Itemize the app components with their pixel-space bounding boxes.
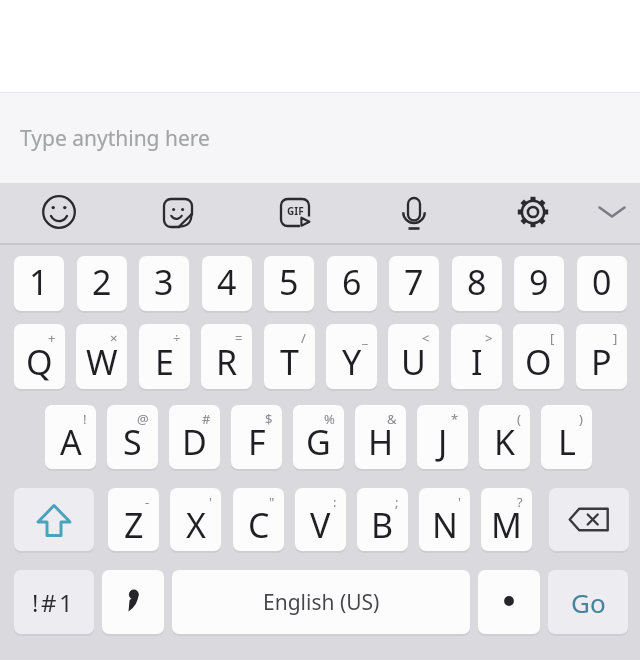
staticText: = xyxy=(235,329,243,347)
button[interactable] xyxy=(156,191,200,235)
staticText: ; xyxy=(395,493,399,511)
button[interactable]: J xyxy=(417,405,468,469)
staticText: 9 xyxy=(529,259,549,305)
button[interactable] xyxy=(590,190,634,234)
button[interactable]: 6 xyxy=(327,256,377,311)
staticText: [ xyxy=(550,329,555,347)
button[interactable]: E xyxy=(139,324,190,389)
button[interactable]: 2 xyxy=(77,256,127,311)
staticText: + xyxy=(48,329,56,347)
button[interactable]: T xyxy=(264,324,315,389)
staticText: 6 xyxy=(342,259,362,305)
button[interactable]: I xyxy=(451,324,502,389)
button[interactable]: B xyxy=(357,488,408,551)
button[interactable] xyxy=(478,570,540,634)
button[interactable]: Go xyxy=(548,570,628,634)
button[interactable]: 9 xyxy=(514,256,564,311)
staticText: A xyxy=(60,419,82,465)
button[interactable]: X xyxy=(170,488,221,551)
button[interactable] xyxy=(102,570,164,634)
staticText: - xyxy=(145,493,150,511)
button[interactable]: English (US) xyxy=(172,570,470,634)
button[interactable]: H xyxy=(355,405,406,469)
button[interactable]: A xyxy=(45,405,96,469)
button[interactable]: O xyxy=(513,324,564,389)
staticText: C xyxy=(248,502,270,548)
staticText: 2 xyxy=(92,259,112,305)
button[interactable] xyxy=(37,190,81,234)
button[interactable]: M xyxy=(481,488,532,551)
staticText: × xyxy=(110,329,118,347)
staticText: !#1 xyxy=(32,586,76,619)
button[interactable]: 8 xyxy=(452,256,502,311)
button[interactable]: C xyxy=(233,488,284,551)
button[interactable]: GIF xyxy=(273,191,317,235)
button[interactable]: N xyxy=(419,488,470,551)
button[interactable]: D xyxy=(169,405,220,469)
staticText: P xyxy=(591,339,612,385)
button[interactable]: 3 xyxy=(139,256,189,311)
staticText: B xyxy=(371,502,394,548)
button[interactable]: 0 xyxy=(577,256,627,311)
button[interactable]: 1 xyxy=(14,256,64,311)
staticText: GIF xyxy=(287,204,304,218)
staticText: O xyxy=(525,339,552,385)
button[interactable] xyxy=(14,488,94,551)
button[interactable]: K xyxy=(479,405,530,469)
staticText: _ xyxy=(362,329,368,347)
button[interactable]: 7 xyxy=(389,256,439,311)
staticText: L xyxy=(558,419,576,465)
staticText: 7 xyxy=(404,259,424,305)
button[interactable]: !#1 xyxy=(14,570,94,634)
staticText: ' xyxy=(458,493,461,511)
staticText: G xyxy=(306,419,331,465)
staticText: > xyxy=(485,329,493,347)
button[interactable] xyxy=(549,488,629,551)
button[interactable]: Q xyxy=(14,324,65,389)
staticText: " xyxy=(269,493,275,511)
staticText: F xyxy=(248,419,266,465)
staticText: Q xyxy=(26,339,53,385)
staticText: H xyxy=(368,419,394,465)
staticText: R xyxy=(216,339,238,385)
button[interactable]: Z xyxy=(108,488,159,551)
button[interactable]: U xyxy=(388,324,439,389)
staticText: / xyxy=(301,329,306,347)
staticText: % xyxy=(324,410,335,428)
staticText: ] xyxy=(613,329,618,347)
staticText: 4 xyxy=(217,259,237,305)
staticText: ! xyxy=(83,410,87,428)
staticText: M xyxy=(491,502,522,548)
staticText: I xyxy=(471,339,483,385)
staticText: ÷ xyxy=(173,329,181,347)
button[interactable]: L xyxy=(541,405,592,469)
button[interactable]: G xyxy=(293,405,344,469)
button[interactable]: 4 xyxy=(202,256,252,311)
button[interactable]: 5 xyxy=(264,256,314,311)
button[interactable]: W xyxy=(76,324,127,389)
button[interactable] xyxy=(392,191,436,235)
staticText: S xyxy=(123,419,142,465)
button[interactable] xyxy=(511,190,555,234)
staticText: W xyxy=(86,339,118,385)
button[interactable]: F xyxy=(231,405,282,469)
staticText: ( xyxy=(517,410,521,428)
button[interactable]: P xyxy=(576,324,627,389)
staticText: @ xyxy=(137,410,149,428)
staticText: Y xyxy=(342,339,362,385)
button[interactable]: R xyxy=(201,324,252,389)
staticText: J xyxy=(438,419,448,465)
button[interactable]: V xyxy=(295,488,346,551)
button[interactable]: S xyxy=(107,405,158,469)
staticText: 5 xyxy=(279,259,299,305)
button[interactable]: Type anything here xyxy=(0,93,640,183)
staticText: Go xyxy=(571,585,606,620)
button[interactable]: Y xyxy=(326,324,377,389)
staticText: # xyxy=(202,410,211,428)
staticText: & xyxy=(387,410,397,428)
staticText: < xyxy=(422,329,430,347)
staticText: ? xyxy=(517,493,523,511)
staticText: V xyxy=(310,502,331,548)
staticText: Type anything here xyxy=(20,124,210,153)
staticText: $ xyxy=(265,410,273,428)
